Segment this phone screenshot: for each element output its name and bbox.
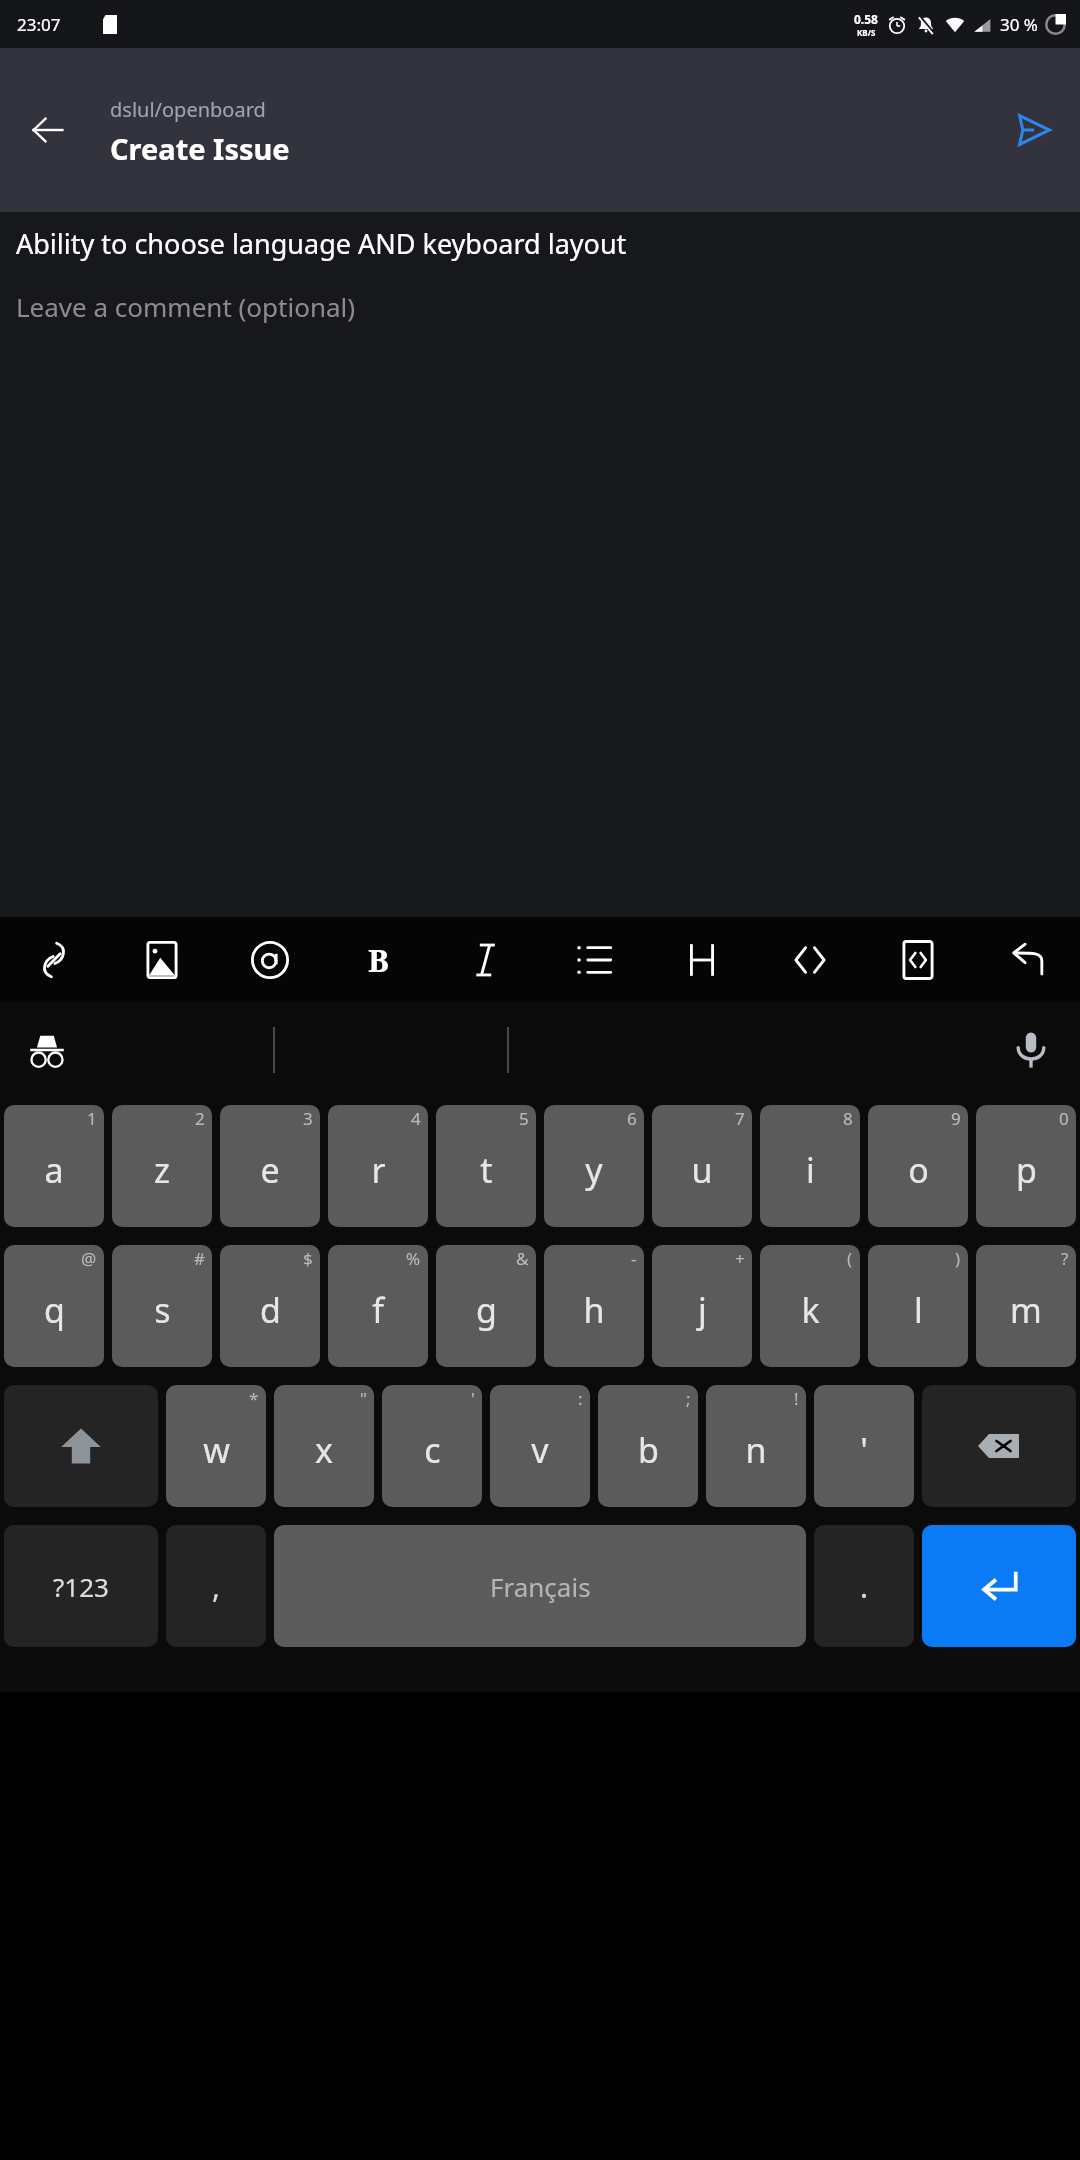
staticText: 0.58 [854,11,878,27]
button[interactable]: 6 [544,1105,644,1227]
staticText: . [860,1566,869,1607]
staticText: r [371,1147,386,1193]
staticText: 23:07 [17,13,61,36]
button[interactable]: Back [10,92,86,168]
button[interactable]: ; [598,1385,698,1507]
staticText: * [249,1387,259,1410]
staticText: u [691,1147,713,1193]
staticText: " [360,1387,367,1410]
staticText: + [735,1247,745,1270]
button[interactable]: Code [756,917,864,1002]
staticText: b [638,1427,659,1473]
staticText: 5 [519,1107,529,1130]
staticText: ? [1061,1247,1069,1270]
staticText: w [203,1427,230,1473]
staticText: - [631,1247,637,1270]
button[interactable]: 0 [976,1105,1076,1227]
staticText: 0 [1059,1107,1069,1130]
button[interactable]: * [166,1385,266,1507]
staticText: a [44,1147,64,1193]
staticText: f [372,1287,384,1333]
staticText: 3 [303,1107,313,1130]
button[interactable]: 5 [436,1105,536,1227]
button[interactable]: Send [996,92,1072,168]
button[interactable]: . [814,1525,914,1647]
button[interactable]: Incognito mode [8,1011,86,1089]
button[interactable]: Image [108,917,216,1002]
staticText: e [260,1147,280,1193]
button[interactable]: 7 [652,1105,752,1227]
button[interactable]: 9 [868,1105,968,1227]
button[interactable]: @ [4,1245,104,1367]
button[interactable]: 3 [220,1105,320,1227]
staticText: 6 [627,1107,637,1130]
button[interactable]: List [540,917,648,1002]
button[interactable]: Ability to choose language AND keyboard … [16,225,1064,262]
staticText: @ [81,1247,97,1270]
staticText: & [516,1247,529,1270]
staticText: h [583,1287,605,1333]
button[interactable]: & [436,1245,536,1367]
staticText: B [368,939,389,981]
button[interactable]: % [328,1245,428,1367]
staticText: Français [490,1569,591,1604]
staticText: i [806,1147,815,1193]
staticText: z [154,1147,170,1193]
staticText: 4 [411,1107,421,1130]
button[interactable]: ! [706,1385,806,1507]
button[interactable]: 2 [112,1105,212,1227]
staticText: 9 [951,1107,961,1130]
button[interactable]: ? [976,1245,1076,1367]
button[interactable]: Undo [972,917,1080,1002]
button[interactable]: Mention [216,917,324,1002]
button[interactable]: Code block [864,917,972,1002]
staticText: ?123 [53,1569,109,1604]
staticText: l [914,1287,923,1333]
staticText: 8 [843,1107,853,1130]
button[interactable]: ?123 [4,1525,158,1647]
button[interactable]: 4 [328,1105,428,1227]
staticText: % [406,1247,421,1270]
staticText: v [531,1427,549,1473]
staticText: Create Issue [110,129,290,168]
staticText: 2 [195,1107,205,1130]
button[interactable]: , [166,1525,266,1647]
button[interactable]: Leave a comment (optional) [16,289,1064,324]
button[interactable]: - [544,1245,644,1367]
staticText: ) [955,1247,961,1270]
button[interactable]: # [112,1245,212,1367]
button[interactable]: ' [814,1385,914,1507]
button[interactable]: : [490,1385,590,1507]
button[interactable]: Link [0,917,108,1002]
button[interactable]: Bold [324,917,432,1002]
button[interactable]: + [652,1245,752,1367]
staticText: o [908,1147,929,1193]
button[interactable]: ( [760,1245,860,1367]
staticText: ( [847,1247,853,1270]
button[interactable]: Italic [432,917,540,1002]
button[interactable]: Français [274,1525,806,1647]
button[interactable]: Enter [922,1525,1076,1647]
staticText: x [315,1427,333,1473]
staticText: 1 [87,1107,97,1130]
staticText: d [260,1287,281,1333]
button[interactable]: 1 [4,1105,104,1227]
button[interactable]: ) [868,1245,968,1367]
staticText: s [154,1287,171,1333]
button[interactable]: 8 [760,1105,860,1227]
staticText: t [480,1147,493,1193]
button[interactable]: $ [220,1245,320,1367]
button[interactable]: " [274,1385,374,1507]
staticText: q [44,1287,65,1333]
staticText: m [1010,1287,1042,1333]
staticText: c [424,1427,441,1473]
staticText: j [698,1287,707,1333]
button[interactable]: Voice input [992,1011,1070,1089]
button[interactable]: Backspace [922,1385,1076,1507]
staticText: ; [686,1387,691,1410]
staticText: 30 % [1000,13,1038,36]
button[interactable]: Shift [4,1385,158,1507]
staticText: : [578,1387,583,1410]
button[interactable]: ' [382,1385,482,1507]
button[interactable]: Heading [648,917,756,1002]
